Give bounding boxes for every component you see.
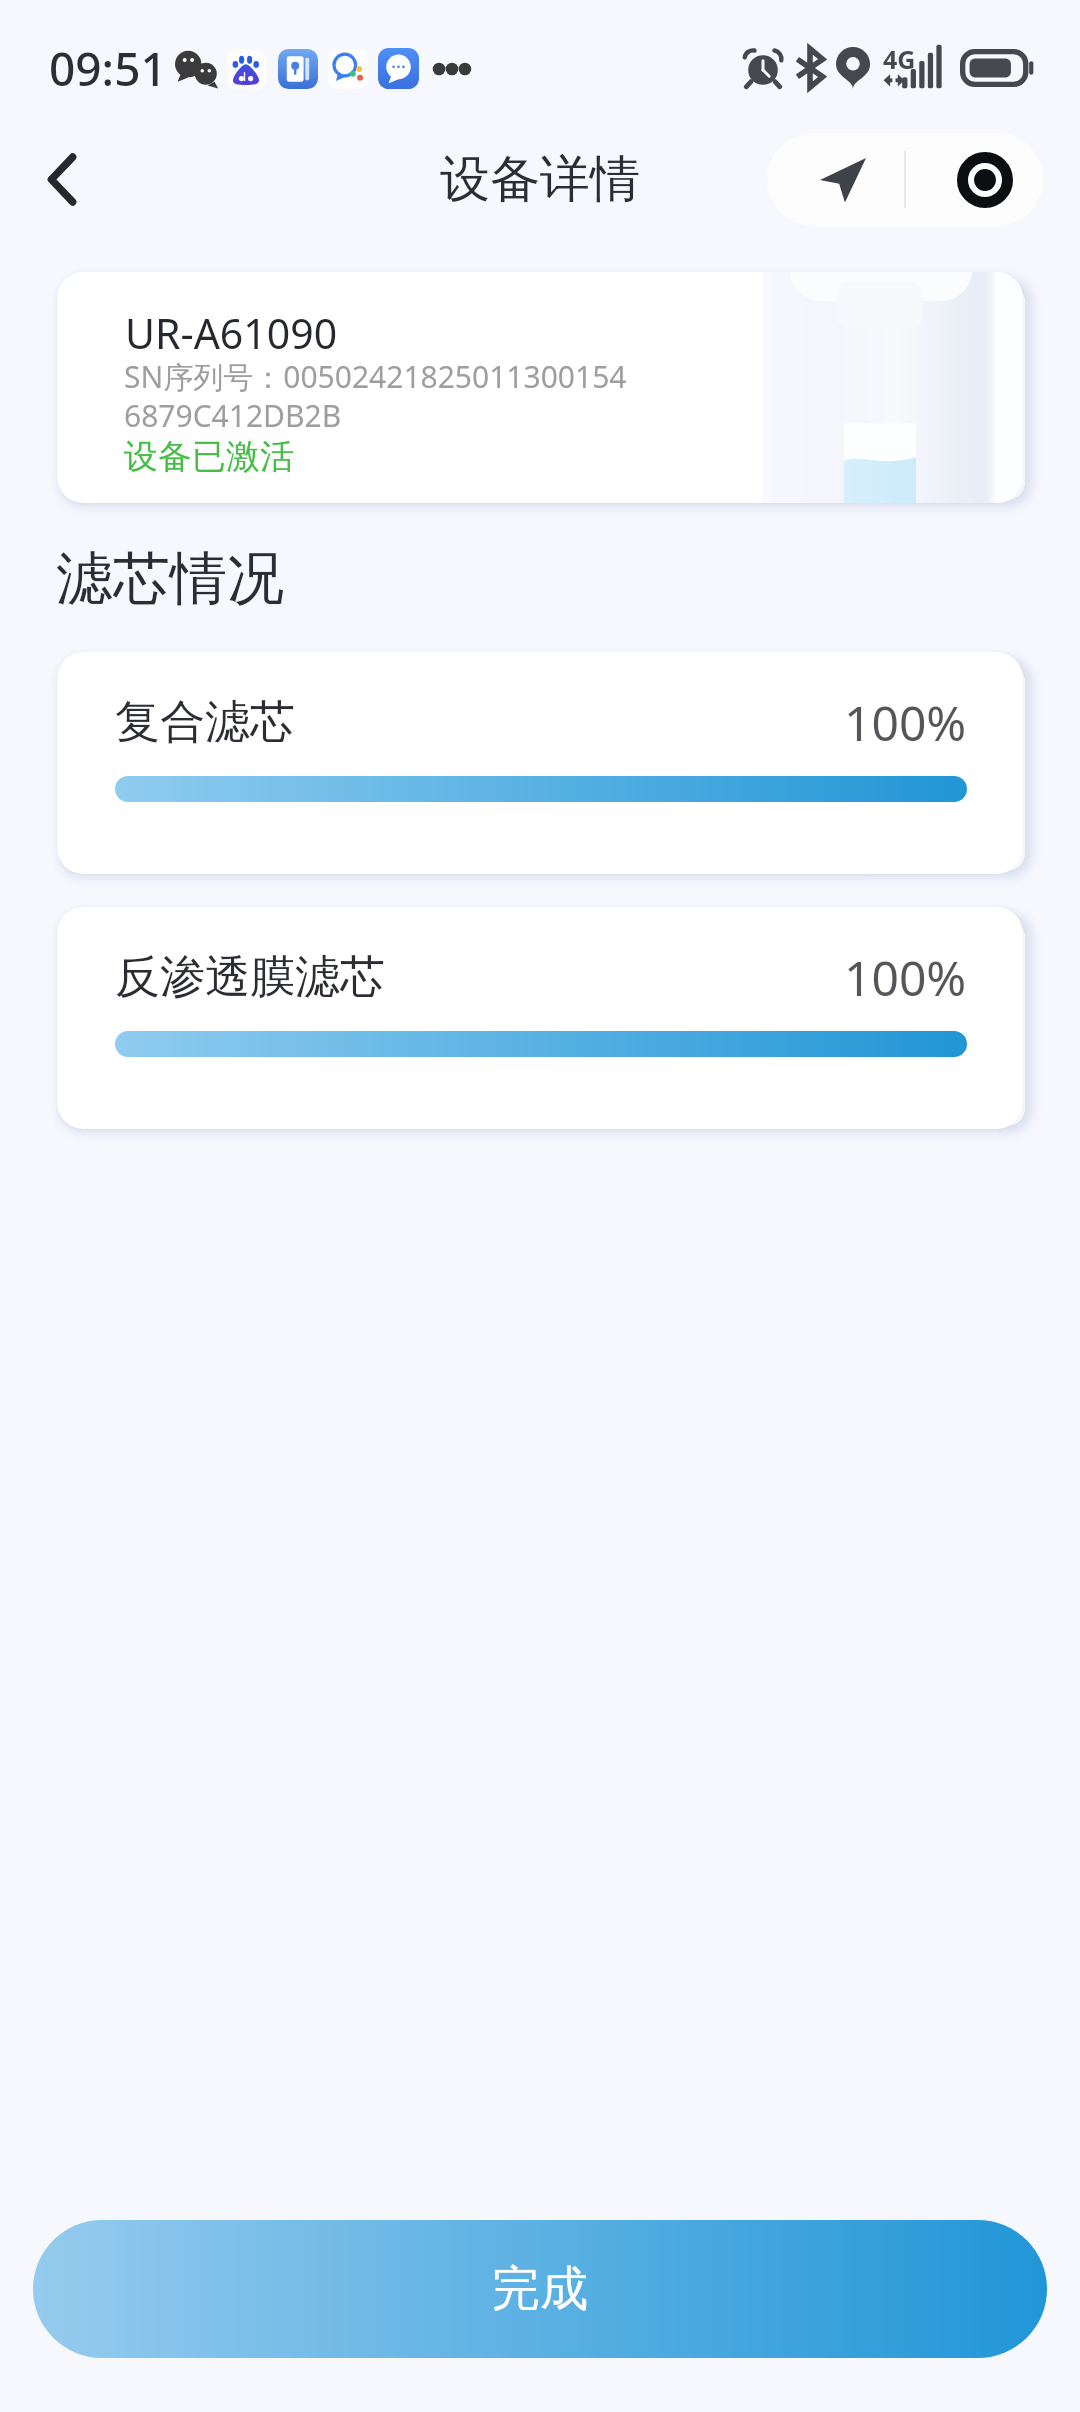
- staticText: 09:51: [49, 37, 167, 100]
- button[interactable]: UR-A61090: [57, 272, 1023, 503]
- staticText: 设备已激活: [124, 435, 294, 478]
- staticText: 100%: [844, 945, 967, 1010]
- staticText: 滤芯情况: [56, 543, 284, 615]
- button[interactable]: More: [906, 133, 1043, 226]
- staticText: 100%: [844, 690, 967, 755]
- staticText: 6879C412DB2B: [124, 395, 342, 436]
- staticText: 设备详情: [440, 148, 640, 211]
- button[interactable]: 完成: [33, 2220, 1047, 2358]
- staticText: 4G: [883, 42, 916, 76]
- button[interactable]: Share: [767, 133, 904, 226]
- staticText: 完成: [492, 2259, 588, 2319]
- staticText: 反渗透膜滤芯: [115, 949, 385, 1006]
- staticText: UR-A61090: [125, 305, 338, 361]
- button[interactable]: 复合滤芯: [57, 652, 1023, 874]
- button[interactable]: Back: [14, 131, 110, 227]
- staticText: SN序列号：00502421825011300154: [124, 356, 627, 397]
- staticText: 复合滤芯: [115, 694, 295, 751]
- button[interactable]: 反渗透膜滤芯: [57, 907, 1023, 1129]
